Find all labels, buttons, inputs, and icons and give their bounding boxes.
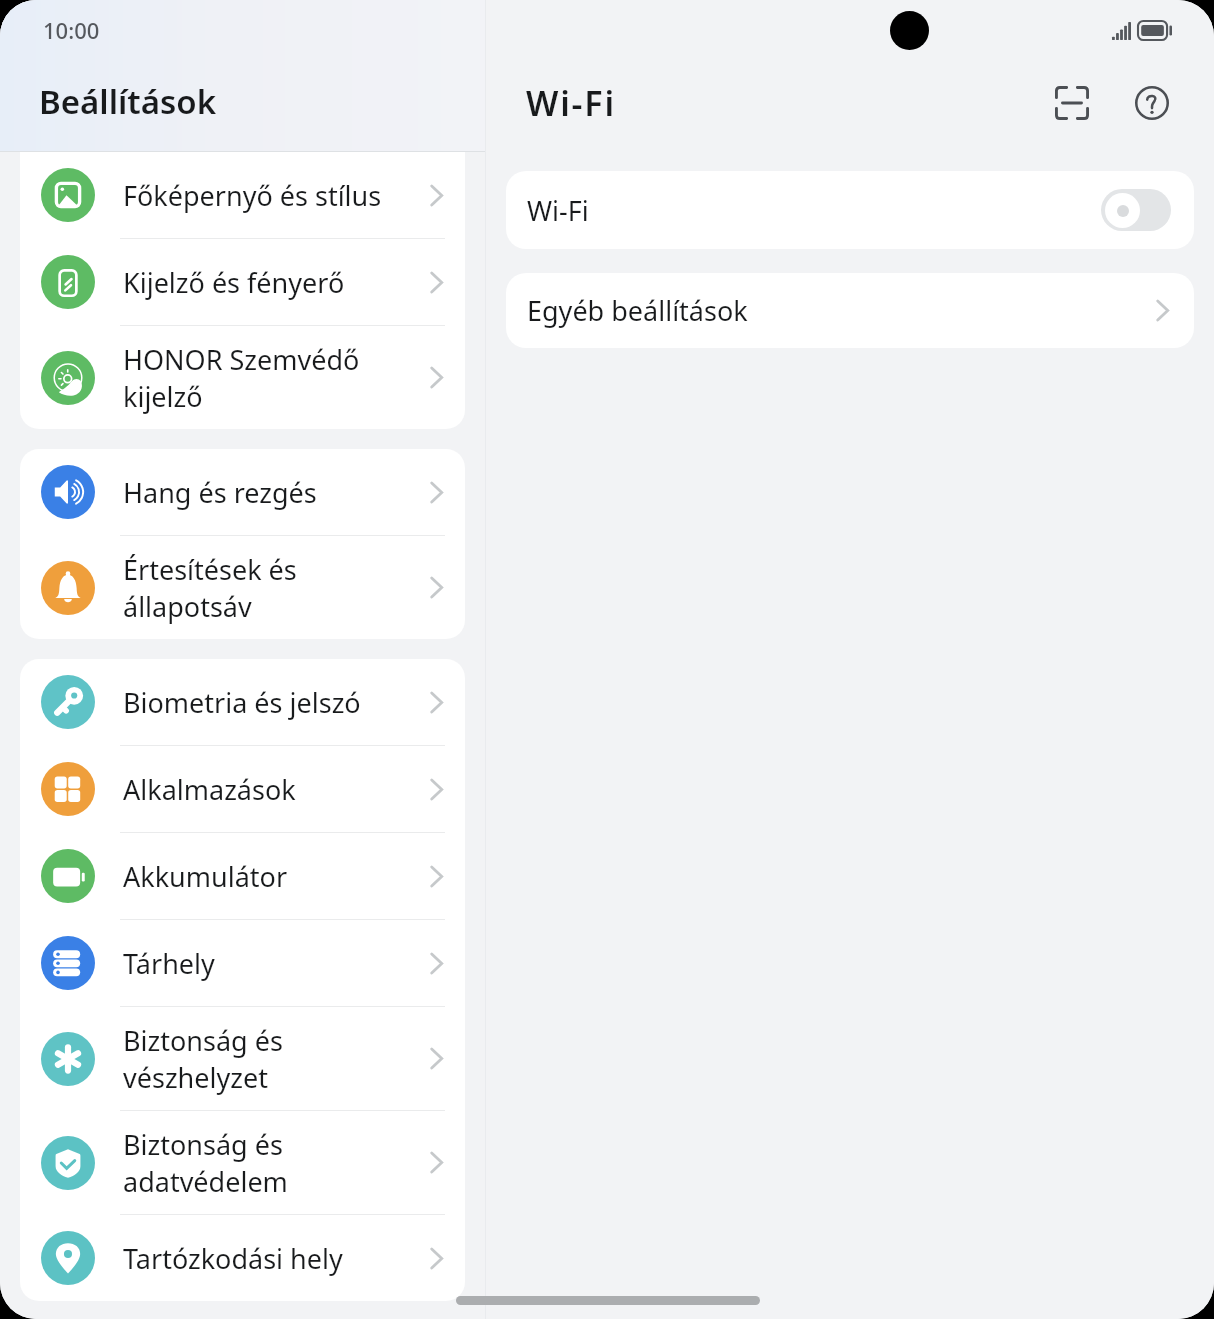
staticText: HONOR Szemvédő kijelző: [123, 341, 427, 415]
button[interactable]: Kijelző és fényerő: [20, 239, 465, 325]
button[interactable]: HONOR Szemvédő kijelző: [20, 326, 465, 429]
staticText: Kijelző és fényerő: [123, 264, 427, 301]
button[interactable]: Wi-Fi: [506, 171, 1194, 249]
staticText: Értesítések és állapotsáv: [123, 551, 427, 625]
button[interactable]: Biztonság és adatvédelem: [20, 1111, 465, 1214]
button[interactable]: Biometria és jelszó: [20, 659, 465, 745]
button[interactable]: Egyéb beállítások: [506, 273, 1194, 348]
button[interactable]: Tárhely: [20, 920, 465, 1006]
button[interactable]: Akkumulátor: [20, 833, 465, 919]
staticText: Hang és rezgés: [123, 474, 427, 511]
staticText: Akkumulátor: [123, 858, 427, 895]
staticText: Wi-Fi: [526, 80, 616, 126]
button[interactable]: Alkalmazások: [20, 746, 465, 832]
staticText: Biztonság és vészhelyzet: [123, 1022, 427, 1096]
staticText: Tartózkodási hely: [123, 1240, 427, 1277]
button[interactable]: Főképernyő és stílus: [20, 152, 465, 238]
button[interactable]: Hang és rezgés: [20, 449, 465, 535]
button[interactable]: Tartózkodási hely: [20, 1215, 465, 1301]
staticText: Főképernyő és stílus: [123, 177, 427, 214]
staticText: Tárhely: [123, 945, 427, 982]
button[interactable]: Scan QR code: [1043, 74, 1101, 132]
button[interactable]: Biztonság és vészhelyzet: [20, 1007, 465, 1110]
staticText: Biometria és jelszó: [123, 684, 427, 721]
staticText: 10:00: [43, 15, 100, 45]
staticText: Egyéb beállítások: [527, 292, 1153, 329]
staticText: Biztonság és adatvédelem: [123, 1126, 427, 1200]
staticText: Wi-Fi: [527, 192, 1101, 229]
staticText: Beállítások: [39, 79, 217, 124]
staticText: Alkalmazások: [123, 771, 427, 808]
button[interactable]: Help: [1123, 74, 1181, 132]
button[interactable]: Értesítések és állapotsáv: [20, 536, 465, 639]
